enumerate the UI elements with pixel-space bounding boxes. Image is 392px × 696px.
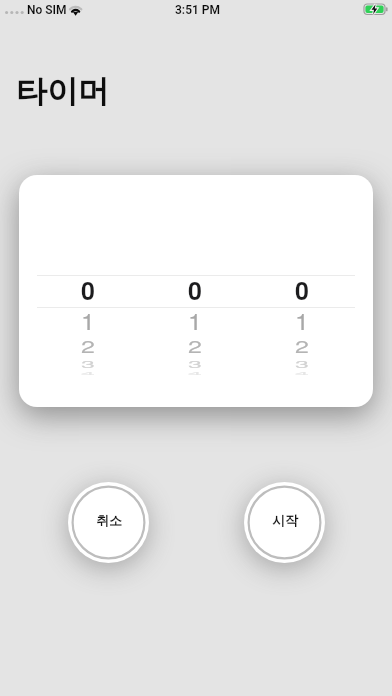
staticText: 1 [81, 304, 95, 334]
staticText: 4 [295, 370, 309, 376]
staticText: 3:51 PM [175, 3, 221, 17]
staticText: 2 [81, 333, 95, 357]
staticText: 3 [188, 356, 202, 369]
staticText: 4 [188, 370, 202, 376]
staticText: No SIM [27, 3, 67, 17]
staticText: 2 [188, 333, 202, 357]
button[interactable]: 시작 [244, 482, 325, 563]
button[interactable]: 취소 [68, 482, 149, 563]
staticText: 시작 [272, 512, 298, 528]
staticText: 0 [81, 272, 95, 306]
staticText: 3 [295, 356, 309, 369]
staticText: 1 [188, 304, 202, 334]
staticText: 3 [81, 356, 95, 369]
staticText: 4 [81, 370, 95, 376]
staticText: 2 [295, 333, 309, 357]
staticText: 1 [295, 304, 309, 334]
staticText: 타이머 [16, 72, 109, 111]
staticText: 취소 [96, 512, 122, 528]
staticText: 0 [295, 272, 309, 306]
staticText: 0 [188, 272, 202, 306]
